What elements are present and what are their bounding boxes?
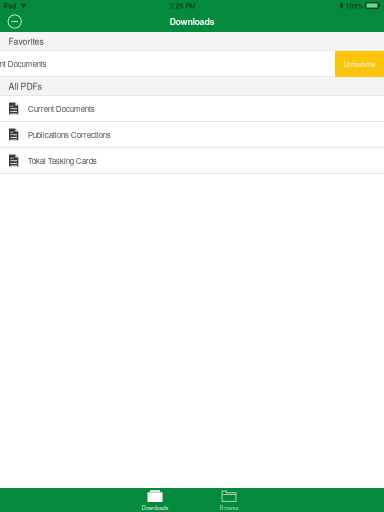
button[interactable]: Unfavorite [335, 51, 384, 77]
staticText: Publications Corrections [28, 129, 111, 140]
staticText: Downloads [141, 504, 168, 512]
staticText: nt Documents [0, 58, 46, 69]
staticText: Browse [219, 504, 238, 512]
button[interactable]: Current Documents [0, 96, 384, 122]
staticText: All PDFs [8, 80, 41, 92]
button[interactable]: Hide sidebar [4, 11, 25, 32]
staticText: Downloads [170, 15, 215, 28]
staticText: Current Documents [28, 103, 95, 114]
staticText: iPad [3, 1, 16, 10]
staticText: Favorites [8, 35, 43, 47]
button[interactable]: Publications Corrections [0, 122, 384, 148]
button[interactable]: Tokai Tasking Cards [0, 148, 384, 174]
staticText: 100% [345, 1, 363, 10]
button[interactable]: Downloads [118, 488, 192, 512]
staticText: 3:25 PM [170, 1, 196, 10]
button[interactable]: Browse [192, 488, 266, 512]
staticText: Tokai Tasking Cards [28, 155, 97, 166]
staticText: Unfavorite [343, 59, 375, 69]
